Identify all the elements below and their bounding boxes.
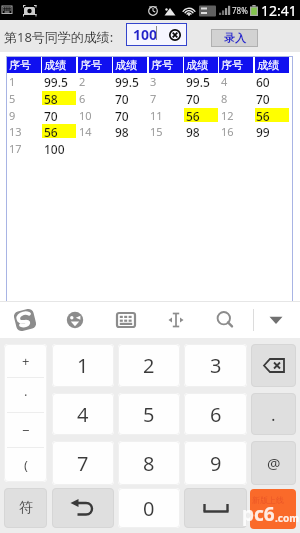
button[interactable]: 序号 [7, 57, 41, 73]
staticText: 4 [221, 74, 228, 88]
staticText: 70 [115, 108, 129, 122]
button[interactable]: Keyboard layout [104, 302, 148, 338]
staticText: 70 [44, 108, 58, 122]
staticText: 符 [19, 499, 33, 517]
staticText: .com [275, 511, 299, 525]
staticText: − [22, 421, 30, 439]
button[interactable]: Space [184, 488, 247, 528]
button[interactable]: Undo [52, 488, 114, 528]
staticText: 序号 [221, 58, 243, 72]
button[interactable]: 序号 [219, 57, 253, 73]
button[interactable]: 1 [52, 344, 114, 387]
staticText: 成绩 [115, 58, 137, 72]
staticText: 16 [221, 124, 234, 138]
staticText: 成绩 [44, 58, 66, 72]
button[interactable]: − [4, 413, 47, 447]
staticText: 13 [9, 124, 22, 138]
staticText: 9 [210, 450, 222, 477]
button[interactable]: Search [203, 302, 247, 338]
staticText: 6 [79, 91, 86, 105]
button[interactable]: Sogou input [3, 302, 47, 338]
button[interactable]: 8 [118, 441, 180, 485]
button[interactable]: 成绩 [255, 57, 289, 73]
button[interactable]: 4 [52, 393, 114, 435]
staticText: 第18号同学的成绩: [4, 28, 114, 46]
button[interactable]: 录入 [211, 29, 258, 47]
staticText: 98 [115, 124, 129, 138]
button[interactable]: @ [251, 441, 296, 485]
staticText: 99.5 [115, 74, 139, 88]
staticText: 4 [77, 401, 89, 428]
staticText: 8 [221, 91, 228, 105]
staticText: 99 [256, 124, 270, 138]
button[interactable]: 符 [4, 488, 47, 528]
staticText: 录入 [224, 31, 246, 45]
staticText: 2 [79, 74, 86, 88]
staticText: 5 [143, 401, 155, 428]
staticText: 12:41 [261, 1, 297, 20]
button[interactable]: Backspace [251, 344, 296, 387]
other: Clear [168, 28, 182, 42]
staticText: . [271, 403, 276, 426]
staticText: 序号 [80, 58, 102, 72]
staticText: 100 [44, 141, 65, 155]
staticText: 7 [150, 91, 157, 105]
staticText: 17 [9, 141, 22, 155]
button[interactable]: ( [4, 448, 47, 482]
staticText: 3 [210, 352, 222, 379]
button[interactable]: Emoji [53, 302, 97, 338]
button[interactable]: Hide keyboard [254, 302, 298, 338]
staticText: 0 [143, 495, 155, 522]
button[interactable]: 成绩 [184, 57, 218, 73]
button[interactable]: 9 [184, 441, 247, 485]
staticText: 99.5 [44, 74, 68, 88]
button[interactable]: Move cursor [154, 302, 198, 338]
staticText: 6 [210, 401, 222, 428]
staticText: 2 [143, 352, 155, 379]
staticText: 新版上线 [252, 495, 284, 505]
staticText: 14 [79, 124, 92, 138]
button[interactable]: 6 [184, 393, 247, 435]
staticText: 99.5 [186, 74, 210, 88]
staticText: 7 [77, 450, 89, 477]
staticText: 1 [9, 74, 16, 88]
staticText: 5 [9, 91, 16, 105]
staticText: 70 [115, 91, 129, 105]
button[interactable]: · [4, 378, 47, 412]
staticText: 序号 [9, 58, 31, 72]
button[interactable]: . [251, 393, 296, 435]
staticText: + [22, 352, 30, 370]
button[interactable]: 序号 [149, 57, 183, 73]
button[interactable]: 成绩 [42, 57, 76, 73]
button[interactable]: 5 [118, 393, 180, 435]
button[interactable]: 2 [118, 344, 180, 387]
staticText: 序号 [151, 58, 173, 72]
staticText: 成绩 [257, 58, 279, 72]
staticText: 56 [44, 124, 58, 138]
button[interactable]: 3 [184, 344, 247, 387]
staticText: 12 [221, 108, 234, 122]
staticText: 成绩 [186, 58, 208, 72]
staticText: 56 [186, 108, 200, 122]
staticText: 11 [150, 108, 163, 122]
staticText: pc6 [242, 501, 275, 527]
staticText: 8 [143, 450, 155, 477]
staticText: 9 [9, 108, 16, 122]
staticText: 70 [186, 91, 200, 105]
button[interactable]: 100 [126, 23, 187, 46]
staticText: 70 [256, 91, 270, 105]
staticText: · [24, 386, 28, 404]
staticText: 1 [77, 352, 89, 379]
button[interactable]: Enter [250, 489, 296, 529]
staticText: 100 [133, 25, 158, 44]
staticText: ( [24, 456, 28, 474]
button[interactable]: 序号 [78, 57, 112, 73]
staticText: 56 [256, 108, 270, 122]
button[interactable]: + [4, 344, 47, 377]
staticText: 3 [150, 74, 157, 88]
button[interactable]: 0 [118, 488, 180, 528]
staticText: 98 [186, 124, 200, 138]
staticText: 10 [79, 108, 92, 122]
button[interactable]: 7 [52, 441, 114, 485]
button[interactable]: 成绩 [113, 57, 147, 73]
